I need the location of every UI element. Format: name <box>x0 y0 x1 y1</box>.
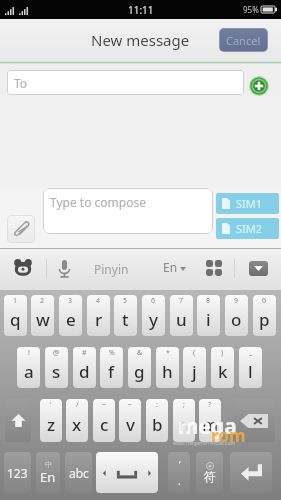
staticText: SIM2 <box>236 221 263 236</box>
staticText: x <box>72 413 82 436</box>
button[interactable]: 0 <box>253 295 276 336</box>
staticText: o <box>231 308 242 331</box>
staticText: 95% <box>243 4 259 15</box>
button[interactable]: To <box>7 70 244 95</box>
button[interactable]: Symbols <box>196 452 223 493</box>
staticText: r <box>95 308 103 331</box>
staticText: SIM1 <box>236 196 263 211</box>
staticText: f <box>108 360 115 383</box>
staticText: k <box>218 360 228 383</box>
staticText: 123 <box>7 465 28 481</box>
staticText: g <box>134 360 145 383</box>
button[interactable]: ; <box>173 399 195 442</box>
staticText: m <box>202 413 219 436</box>
staticText: ! <box>28 348 30 358</box>
button[interactable]: SIM1 <box>216 193 279 214</box>
staticText: Pinyin <box>94 261 129 277</box>
button[interactable]: Hide keyboard <box>249 261 268 276</box>
button[interactable]: Input method settings <box>14 260 32 276</box>
button[interactable]: Voice input <box>56 258 73 279</box>
button[interactable]: ? <box>199 399 221 442</box>
staticText: ( <box>193 348 196 358</box>
staticText: ~ <box>128 400 133 410</box>
button[interactable]: @ <box>45 347 68 388</box>
button[interactable]: Enter <box>230 452 272 493</box>
button[interactable]: ( <box>183 347 206 388</box>
button[interactable]: Add recipient <box>249 76 269 96</box>
button[interactable]: abc <box>65 452 92 493</box>
button[interactable]: ~ <box>119 399 141 442</box>
staticText: c <box>100 413 109 436</box>
button[interactable]: 1 <box>4 295 27 336</box>
staticText: mega <box>178 412 237 441</box>
staticText: n <box>179 413 190 436</box>
staticText: e <box>66 308 76 331</box>
button[interactable]: ' <box>40 399 62 442</box>
staticText: # <box>82 348 87 358</box>
staticText: 9 <box>234 296 239 306</box>
button[interactable]: Type to compose <box>43 188 213 234</box>
button[interactable]: 4 <box>87 295 110 336</box>
staticText: ’ <box>179 458 181 472</box>
button[interactable]: Space <box>96 452 158 493</box>
staticText: * <box>166 348 170 358</box>
staticText: 中 <box>45 460 52 469</box>
staticText: 7 <box>179 296 184 306</box>
staticText: En <box>40 468 56 486</box>
staticText: 6 <box>151 296 156 306</box>
staticText: ; <box>183 400 185 410</box>
staticText: 4 <box>96 296 101 306</box>
button[interactable]: Numbers <box>4 452 31 493</box>
button[interactable]: 5 <box>114 295 137 336</box>
staticText: 11:11 <box>128 3 154 17</box>
button[interactable]: SIM2 <box>216 218 279 239</box>
button[interactable]: Language <box>36 452 60 493</box>
button[interactable]: Punctuation <box>168 452 190 493</box>
button[interactable]: Attach <box>7 215 35 243</box>
staticText: & <box>137 348 143 358</box>
staticText: : <box>156 400 158 410</box>
staticText: abc <box>69 465 89 481</box>
button[interactable]: Delete <box>233 399 275 442</box>
staticText: y <box>149 308 158 331</box>
button[interactable]: ~ <box>93 399 115 442</box>
staticText: @ <box>53 348 60 358</box>
button[interactable]: 7 <box>170 295 193 336</box>
staticText: h <box>162 360 173 383</box>
staticText: To <box>14 75 28 91</box>
button[interactable]: Cancel <box>220 29 267 51</box>
button[interactable]: * <box>156 347 179 388</box>
button[interactable]: Shift <box>5 399 31 442</box>
button[interactable]: En <box>163 259 186 275</box>
button[interactable]: ) <box>211 347 234 388</box>
staticText: / <box>76 400 79 410</box>
staticText: ) <box>221 348 224 358</box>
staticText: ~ <box>102 400 107 410</box>
button[interactable]: ! <box>17 347 40 388</box>
button[interactable]: Keyboard layout <box>206 260 222 276</box>
staticText: ? <box>208 400 212 410</box>
button[interactable]: & <box>128 347 151 388</box>
button[interactable]: _ <box>239 347 262 388</box>
staticText: En <box>163 259 178 275</box>
staticText: 符 <box>204 469 216 484</box>
staticText: 2 <box>40 296 45 306</box>
button[interactable]: 8 <box>197 295 220 336</box>
staticText: _ <box>249 348 253 358</box>
button[interactable]: 3 <box>59 295 82 336</box>
staticText: 3 <box>68 296 73 306</box>
staticText: t <box>122 308 129 331</box>
button[interactable]: / <box>66 399 88 442</box>
staticText: 0 <box>262 296 267 306</box>
staticText: 8 <box>206 296 211 306</box>
staticText: www.megarom-mods.com <box>173 440 236 447</box>
button[interactable]: # <box>73 347 96 388</box>
staticText: 1 <box>13 296 18 306</box>
button[interactable]: % <box>100 347 123 388</box>
staticText: z <box>47 413 56 436</box>
button[interactable]: 2 <box>31 295 54 336</box>
button[interactable]: 9 <box>225 295 248 336</box>
staticText: i <box>206 308 211 331</box>
button[interactable]: : <box>146 399 168 442</box>
button[interactable]: 6 <box>142 295 165 336</box>
